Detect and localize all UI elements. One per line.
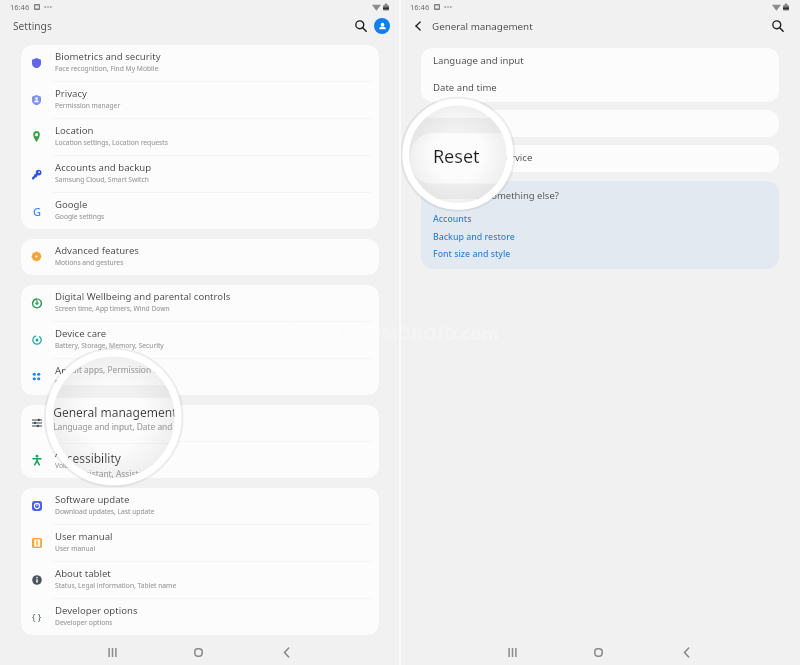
staticText: Screen time, App timers, Wind Down: [53, 272, 197, 283]
staticText: General management: [432, 20, 533, 33]
button[interactable]: About tablet: [21, 562, 379, 598]
button[interactable]: Location: [11, 40, 458, 85]
button[interactable]: Software update: [11, 502, 458, 547]
staticText: Developer options: [55, 618, 113, 627]
staticText: Accessibility: [55, 447, 110, 460]
button[interactable]: Back: [410, 18, 426, 34]
button[interactable]: Accounts: [433, 213, 472, 225]
staticText: Download updates, Last update: [55, 507, 155, 516]
staticText: { }: [32, 611, 42, 623]
staticText: Location settings, Location requests: [53, 64, 194, 75]
staticText: Date and time: [433, 81, 497, 94]
staticText: Status, Legal information, Tablet name: [55, 581, 177, 590]
staticText: General management: [55, 410, 154, 423]
button[interactable]: Reset: [421, 110, 779, 137]
button[interactable]: Back: [675, 641, 697, 663]
button[interactable]: Privacy: [11, 0, 458, 39]
button[interactable]: Customization Service: [421, 145, 779, 172]
button[interactable]: Home: [187, 641, 209, 663]
button[interactable]: Date and time: [421, 75, 779, 102]
button[interactable]: { }: [11, 640, 458, 665]
button[interactable]: Search: [351, 16, 371, 36]
button[interactable]: Home: [587, 641, 609, 663]
staticText: Customization Service: [433, 151, 533, 164]
staticText: Location: [53, 47, 102, 63]
staticText: Customization Service: [433, 210, 621, 234]
staticText: Voice Assistant, Assistant menu: [53, 468, 177, 479]
button[interactable]: User manual: [11, 548, 458, 593]
staticText: Device care: [53, 300, 118, 317]
button[interactable]: Accounts and backup: [11, 87, 458, 132]
staticText: Developer options: [55, 604, 138, 617]
button[interactable]: Language and input: [421, 48, 779, 75]
button[interactable]: Accessibility: [11, 444, 458, 489]
button[interactable]: Date and time: [410, 67, 800, 118]
staticText: Privacy: [55, 87, 87, 100]
button[interactable]: General management: [21, 405, 379, 441]
button[interactable]: Advanced features: [11, 190, 458, 235]
staticText: Google: [55, 198, 88, 211]
button[interactable]: Recents: [501, 641, 523, 663]
button[interactable]: { }: [21, 599, 379, 635]
staticText: Reset: [433, 116, 458, 129]
staticText: Accessibility: [53, 450, 122, 467]
button[interactable]: Device care: [11, 294, 458, 339]
button[interactable]: Recents: [101, 641, 123, 663]
staticText: General management: [53, 404, 177, 420]
button[interactable]: Apps: [11, 340, 458, 385]
staticText: User manual: [55, 530, 113, 543]
button[interactable]: About tablet: [11, 594, 458, 639]
button[interactable]: Apps: [21, 359, 379, 395]
button[interactable]: Back: [275, 641, 297, 663]
button[interactable]: Accounts and backup: [21, 156, 379, 192]
button[interactable]: Backup and restore: [433, 231, 515, 243]
button[interactable]: Reset: [410, 133, 800, 184]
button[interactable]: Device care: [21, 322, 379, 358]
staticText: Motions and gestures: [53, 214, 139, 225]
staticText: G: [33, 204, 41, 217]
staticText: Screen time, App timers, Wind Down: [55, 304, 170, 313]
staticText: Google: [53, 139, 94, 155]
staticText: Advanced features: [55, 244, 139, 257]
staticText: Default apps, Permission manager: [55, 378, 164, 387]
button[interactable]: Location: [21, 119, 379, 155]
staticText: Samsung Cloud, Smart Switch: [55, 175, 149, 184]
button[interactable]: Customization Service: [410, 199, 800, 250]
button[interactable]: Font size and style: [433, 248, 511, 260]
staticText: Device care: [55, 327, 107, 340]
staticText: Settings: [13, 19, 52, 33]
button[interactable]: G: [21, 193, 379, 229]
button[interactable]: Software update: [21, 488, 379, 524]
staticText: Biometrics and security: [55, 50, 161, 63]
button[interactable]: User manual: [21, 525, 379, 561]
staticText: Language and input: [433, 54, 524, 67]
button[interactable]: Privacy: [21, 82, 379, 118]
button[interactable]: Digital Wellbeing and parental controls: [11, 248, 458, 293]
staticText: User manual: [55, 544, 96, 553]
staticText: Google settings: [53, 157, 116, 168]
button[interactable]: Digital Wellbeing and parental controls: [21, 285, 379, 321]
button[interactable]: Search: [769, 17, 787, 35]
staticText: Language and input, Date and time: [55, 424, 167, 433]
button[interactable]: Language and input: [410, 16, 800, 67]
button[interactable]: Biometrics and security: [21, 45, 379, 81]
button[interactable]: General management: [11, 398, 458, 443]
staticText: 16:46: [410, 2, 430, 12]
staticText: Motions and gestures: [55, 258, 124, 267]
button[interactable]: Accessibility: [21, 442, 379, 478]
staticText: Digital Wellbeing and parental controls: [53, 254, 273, 270]
staticText: Apps: [53, 347, 82, 363]
button[interactable]: Advanced features: [21, 239, 379, 275]
button[interactable]: G: [11, 133, 458, 178]
button[interactable]: Account: [374, 18, 390, 34]
